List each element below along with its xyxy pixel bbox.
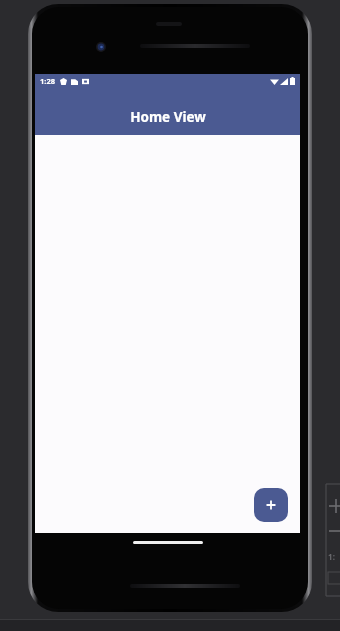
- staticText: Home View: [130, 108, 206, 126]
- staticText: 1:: [328, 551, 335, 562]
- staticText: 1:28: [40, 76, 55, 86]
- button[interactable]: Add: [254, 488, 288, 522]
